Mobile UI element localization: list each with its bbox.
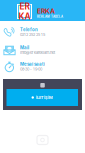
button[interactable]: Mesai saati bbox=[0, 60, 85, 73]
staticText: Telefon bbox=[20, 27, 38, 32]
staticText: REKLAM TABELA bbox=[37, 15, 63, 18]
staticText: KA bbox=[18, 11, 30, 21]
button[interactable]: Telefon bbox=[0, 25, 85, 38]
staticText: ERKA bbox=[37, 7, 55, 15]
staticText: Mail bbox=[20, 45, 29, 50]
staticText: İLETİŞİM bbox=[36, 95, 53, 100]
staticText: info@erkareklam.net bbox=[20, 50, 55, 55]
staticText: 0212 252 25 15 bbox=[20, 32, 45, 37]
staticText: ER bbox=[19, 1, 29, 11]
button[interactable]: Mail bbox=[0, 43, 85, 56]
button[interactable]: İLETİŞİM bbox=[6, 89, 78, 106]
staticText: Mesai saati bbox=[20, 61, 45, 67]
staticText: 08:30 - 19:00 bbox=[20, 67, 42, 71]
